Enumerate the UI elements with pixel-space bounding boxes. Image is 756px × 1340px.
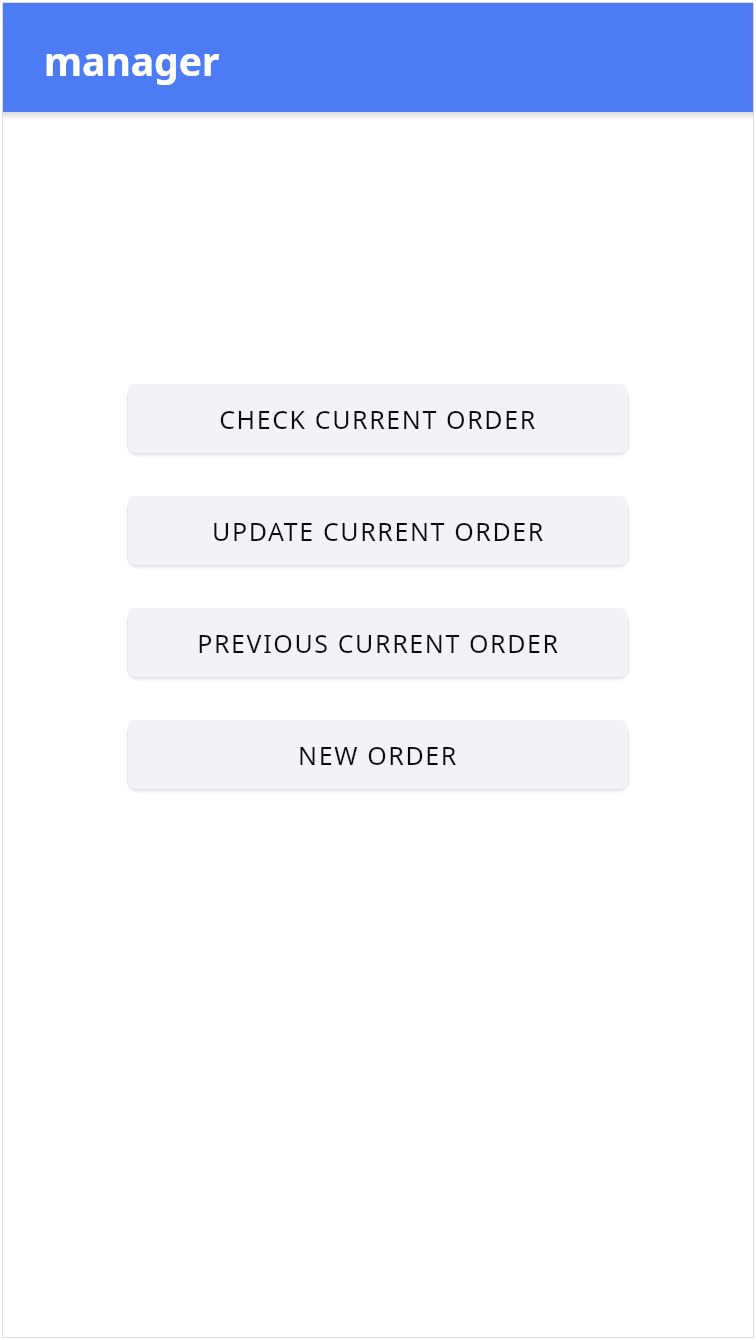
button[interactable]: NEW ORDER bbox=[128, 720, 628, 789]
button[interactable]: PREVIOUS CURRENT ORDER bbox=[128, 608, 628, 677]
staticText: NEW ORDER bbox=[298, 738, 458, 772]
staticText: PREVIOUS CURRENT ORDER bbox=[197, 626, 560, 660]
staticText: CHECK CURRENT ORDER bbox=[219, 402, 537, 436]
staticText: UPDATE CURRENT ORDER bbox=[212, 514, 545, 548]
staticText: manager bbox=[44, 34, 220, 87]
button[interactable]: CHECK CURRENT ORDER bbox=[128, 384, 628, 453]
button[interactable]: UPDATE CURRENT ORDER bbox=[128, 496, 628, 565]
